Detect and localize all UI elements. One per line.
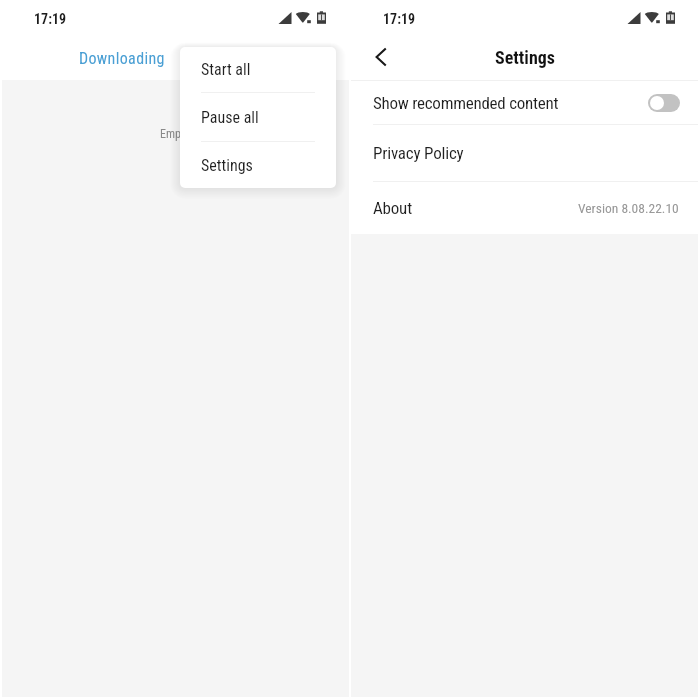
staticText: Privacy Policy <box>373 143 464 163</box>
button[interactable]: Show recommended content <box>351 81 698 124</box>
staticText: Version 8.08.22.10 <box>578 200 679 216</box>
staticText: Downloading <box>79 49 165 68</box>
button[interactable]: Start all <box>180 47 336 92</box>
button[interactable]: Back <box>362 38 400 76</box>
button[interactable]: Show recommended content toggle <box>648 94 680 112</box>
button[interactable]: About <box>351 182 698 234</box>
button[interactable]: Downloading <box>58 38 186 80</box>
staticText: Start all <box>201 60 251 79</box>
button[interactable]: Privacy Policy <box>351 125 698 181</box>
staticText: 17:19 <box>383 11 416 27</box>
button[interactable]: Settings <box>180 142 336 188</box>
staticText: Settings <box>201 156 253 175</box>
staticText: Show recommended content <box>373 93 559 113</box>
button[interactable]: Pause all <box>180 93 336 141</box>
staticText: Pause all <box>201 108 259 127</box>
staticText: Settings <box>495 47 555 68</box>
staticText: Empty <box>160 127 190 141</box>
staticText: About <box>373 198 412 218</box>
staticText: 17:19 <box>34 11 67 27</box>
